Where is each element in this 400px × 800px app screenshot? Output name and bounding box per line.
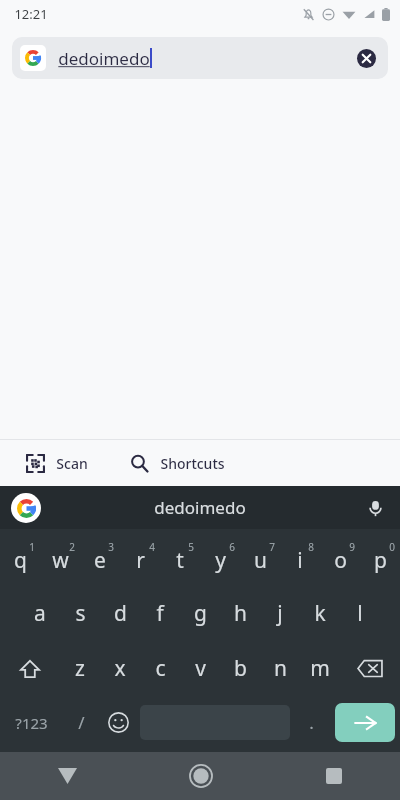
button[interactable]: s [60, 586, 100, 641]
button[interactable]: dedoimedo [144, 492, 256, 523]
button[interactable]: v [180, 641, 220, 696]
button[interactable]: k [300, 586, 340, 641]
button[interactable]: Shortcuts [126, 450, 229, 477]
staticText: ?123 [15, 713, 48, 733]
staticText: v [195, 654, 206, 683]
button[interactable]: . [293, 696, 330, 749]
staticText: n [274, 654, 287, 683]
staticText: m [310, 654, 330, 683]
button[interactable]: Google [11, 493, 41, 523]
button[interactable]: m [300, 641, 340, 696]
button[interactable]: Voice input [362, 495, 388, 521]
button[interactable]: u [240, 529, 280, 586]
button[interactable]: Shift [0, 641, 60, 696]
staticText: 7 [269, 540, 275, 554]
staticText: 6 [229, 540, 235, 554]
staticText: j [277, 599, 283, 628]
staticText: / [78, 711, 85, 734]
staticText: c [155, 654, 166, 683]
staticText: g [194, 599, 207, 628]
button[interactable]: h [220, 586, 260, 641]
button[interactable]: t [160, 529, 200, 586]
button[interactable]: j [260, 586, 300, 641]
button[interactable]: Emoji [100, 696, 137, 749]
staticText: w [52, 546, 69, 575]
staticText: u [254, 546, 267, 575]
staticText: 0 [389, 540, 395, 554]
button[interactable]: r [120, 529, 160, 586]
staticText: s [75, 599, 86, 628]
button[interactable]: a [20, 586, 60, 641]
button[interactable]: Backspace [340, 641, 400, 696]
staticText: z [75, 654, 85, 683]
staticText: 12:21 [14, 5, 48, 23]
staticText: l [357, 599, 363, 628]
staticText: y [215, 546, 226, 575]
button[interactable]: Recents [267, 752, 400, 800]
staticText: a [34, 599, 46, 628]
button[interactable]: ?123 [0, 696, 63, 749]
button[interactable]: q [0, 529, 40, 586]
staticText: 2 [69, 540, 75, 554]
staticText: h [234, 599, 247, 628]
button[interactable]: c [140, 641, 180, 696]
button[interactable]: i [280, 529, 320, 586]
button[interactable]: Clear search [352, 44, 380, 72]
button[interactable]: z [60, 641, 100, 696]
staticText: p [374, 546, 387, 575]
button[interactable]: g [180, 586, 220, 641]
staticText: dedoimedo [154, 496, 246, 519]
button[interactable]: Scan [22, 450, 92, 477]
staticText: i [297, 546, 303, 575]
button[interactable]: e [80, 529, 120, 586]
staticText: o [334, 546, 347, 575]
button[interactable]: Back [0, 752, 134, 800]
staticText: Shortcuts [160, 454, 225, 473]
staticText: b [234, 654, 247, 683]
button[interactable]: l [340, 586, 380, 641]
staticText: 9 [349, 540, 355, 554]
button[interactable]: n [260, 641, 300, 696]
staticText: f [156, 599, 164, 628]
button[interactable]: Home [134, 752, 267, 800]
staticText: e [94, 546, 106, 575]
staticText: 4 [149, 540, 155, 554]
staticText: Scan [56, 454, 88, 473]
staticText: k [314, 599, 326, 628]
staticText: t [176, 546, 184, 575]
staticText: q [14, 546, 27, 575]
button[interactable]: o [320, 529, 360, 586]
button[interactable]: b [220, 641, 260, 696]
button[interactable]: p [360, 529, 400, 586]
staticText: 5 [188, 540, 194, 554]
staticText: dedoimedo [58, 47, 150, 70]
staticText: x [114, 654, 126, 683]
staticText: . [309, 711, 314, 734]
staticText: 3 [108, 540, 114, 554]
staticText: d [114, 599, 127, 628]
button[interactable]: y [200, 529, 240, 586]
staticText: r [136, 546, 145, 575]
button[interactable]: Search [335, 703, 395, 742]
button[interactable]: f [140, 586, 180, 641]
button[interactable]: d [100, 586, 140, 641]
button[interactable]: dedoimedo [12, 37, 388, 79]
button[interactable]: / [63, 696, 100, 749]
staticText: 1 [29, 540, 35, 554]
button[interactable]: x [100, 641, 140, 696]
staticText: 8 [308, 540, 314, 554]
button[interactable]: w [40, 529, 80, 586]
